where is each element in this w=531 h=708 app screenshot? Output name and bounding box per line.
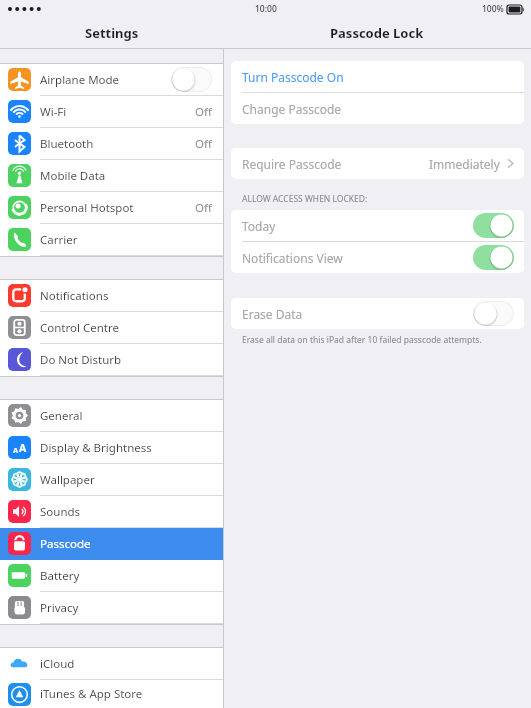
staticText: Immediately [429, 156, 500, 172]
button[interactable]: Change Passcode [231, 93, 524, 124]
button[interactable]: Carrier [0, 224, 223, 255]
button[interactable]: Control Centre [0, 312, 223, 343]
other: iCloud [8, 652, 31, 675]
other: Display and Brightness [8, 436, 31, 459]
staticText: Personal Hotspot [40, 200, 134, 216]
staticText: Privacy [40, 600, 79, 616]
staticText: Notifications View [242, 250, 343, 266]
button[interactable]: Notifications [0, 280, 223, 311]
button[interactable]: Display and Brightness [0, 432, 223, 463]
staticText: 100% [482, 3, 504, 15]
staticText: Control Centre [40, 320, 119, 336]
staticText: Airplane Mode [40, 72, 120, 88]
other: Airplane Mode [8, 68, 31, 91]
button[interactable]: iTunes and App Store [0, 680, 223, 708]
other: Battery [8, 564, 31, 587]
other: Bluetooth [8, 132, 31, 155]
other: Control Centre [8, 316, 31, 339]
other: Do Not Disturb [8, 348, 31, 371]
staticText: General [40, 408, 83, 424]
staticText: Off [195, 104, 212, 120]
button[interactable]: Erase Data [231, 298, 524, 329]
staticText: Passcode [40, 536, 91, 552]
other: Wallpaper [8, 468, 31, 491]
staticText: Change Passcode [242, 101, 342, 117]
staticText: A [13, 445, 19, 455]
button[interactable]: Sounds [0, 496, 223, 527]
staticText: Settings [85, 24, 139, 42]
button[interactable]: General [0, 400, 223, 431]
staticText: Wallpaper [40, 472, 95, 488]
other: Passcode [8, 532, 31, 555]
button[interactable]: Passcode [0, 528, 223, 559]
staticText: iCloud [40, 656, 75, 672]
other: Mobile Data [8, 164, 31, 187]
button[interactable]: Wallpaper [0, 464, 223, 495]
button[interactable]: Battery [0, 560, 223, 591]
staticText: Turn Passcode On [242, 69, 344, 85]
staticText: Today [242, 218, 276, 234]
other: Privacy [8, 596, 31, 619]
other: Notifications [8, 284, 31, 307]
staticText: Do Not Disturb [40, 352, 122, 368]
staticText: Notifications [40, 288, 109, 304]
staticText: iTunes & App Store [40, 686, 143, 702]
other: Personal Hotspot [8, 196, 31, 219]
button[interactable]: Airplane Mode [0, 64, 223, 95]
button[interactable]: iCloud [0, 648, 223, 679]
button[interactable]: Turn Passcode On [231, 61, 524, 92]
button[interactable]: Bluetooth [0, 128, 223, 159]
staticText: Bluetooth [40, 136, 94, 152]
staticText: A [19, 441, 27, 455]
other: iTunes and App Store [8, 683, 31, 706]
staticText: Erase all data on this iPad after 10 fai… [242, 334, 482, 346]
staticText: ALLOW ACCESS WHEN LOCKED: [242, 193, 368, 205]
button[interactable]: Wi-Fi [0, 96, 223, 127]
staticText: Sounds [40, 504, 81, 520]
other: Sounds [8, 500, 31, 523]
button[interactable]: On [473, 213, 514, 238]
staticText: Display & Brightness [40, 440, 152, 456]
staticText: Battery [40, 568, 80, 584]
staticText: Off [195, 200, 212, 216]
staticText: Erase Data [242, 306, 303, 322]
staticText: Passcode Lock [330, 24, 424, 42]
button[interactable]: Personal Hotspot [0, 192, 223, 223]
staticText: Wi-Fi [40, 104, 67, 120]
button[interactable]: Privacy [0, 592, 223, 623]
staticText: 10:00 [255, 3, 277, 15]
button[interactable]: Do Not Disturb [0, 344, 223, 375]
staticText: Off [195, 136, 212, 152]
button[interactable]: Mobile Data [0, 160, 223, 191]
button[interactable]: Today [231, 210, 524, 241]
button[interactable]: Require Passcode [231, 148, 524, 179]
other: Carrier [8, 228, 31, 251]
button[interactable]: Notifications View [231, 242, 524, 273]
other: General [8, 404, 31, 427]
button[interactable]: Off [473, 301, 514, 326]
button[interactable]: Off [171, 67, 212, 92]
staticText: Mobile Data [40, 168, 106, 184]
button[interactable]: On [473, 245, 514, 270]
staticText: Require Passcode [242, 156, 342, 172]
other: Wi-Fi [8, 100, 31, 123]
staticText: Carrier [40, 232, 78, 248]
